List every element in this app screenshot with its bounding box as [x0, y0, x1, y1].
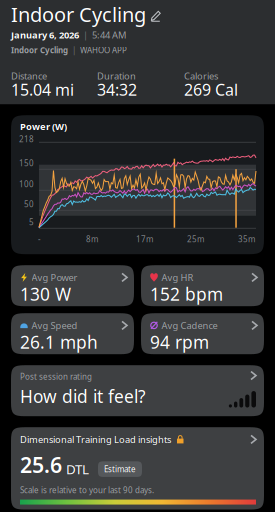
staticText: Dimensional Training Load insights	[20, 433, 171, 446]
button[interactable]: Avg Power	[11, 265, 134, 306]
staticText: Power (W)	[20, 120, 67, 133]
staticText: |	[72, 45, 76, 56]
staticText: 100	[19, 179, 34, 189]
staticText: 150	[19, 158, 34, 168]
staticText: Duration	[97, 70, 136, 82]
staticText: Indoor Cycling	[11, 1, 146, 28]
button[interactable]: Avg Cadence	[141, 313, 264, 354]
staticText: Avg Speed	[31, 319, 77, 332]
staticText: 15.04 mi	[11, 79, 74, 100]
button[interactable]: Avg Speed	[11, 313, 134, 354]
staticText: Post session rating	[20, 371, 92, 382]
staticText: |	[83, 29, 88, 41]
staticText: 5	[29, 217, 34, 227]
staticText: 94 rpm	[150, 331, 209, 354]
staticText: 269 Cal	[184, 79, 238, 100]
staticText: Scale is relative to your last 90 days.	[20, 485, 154, 495]
staticText: 130 W	[20, 283, 71, 306]
staticText: Distance	[11, 70, 47, 82]
staticText: Avg Cadence	[161, 319, 217, 332]
staticText: DTL	[66, 460, 89, 478]
staticText: 25.6	[20, 451, 62, 479]
staticText: Avg HR	[161, 271, 193, 284]
button[interactable]: Dimensional Training Load insights	[11, 427, 264, 509]
staticText: 34:32	[97, 79, 137, 100]
staticText: -	[38, 234, 41, 244]
staticText: 35m	[238, 234, 255, 244]
button[interactable]: Rename activity	[146, 7, 166, 22]
staticText: Estimate	[104, 464, 136, 474]
button[interactable]: Avg HR	[141, 265, 264, 306]
staticText: 50	[24, 199, 34, 209]
staticText: January 6, 2026	[11, 29, 79, 41]
staticText: Calories	[184, 70, 218, 82]
staticText: How did it feel?	[20, 385, 146, 408]
staticText: Indoor Cycling	[11, 45, 68, 56]
button[interactable]: Post session rating	[11, 365, 264, 416]
staticText: 152 bpm	[150, 283, 223, 306]
staticText: 5:44 AM	[92, 29, 126, 41]
staticText: 8m	[86, 234, 98, 244]
staticText: 25m	[187, 234, 204, 244]
staticText: 17m	[136, 234, 153, 244]
staticText: WAHOO APP	[80, 45, 127, 56]
staticText: 26.1 mph	[20, 331, 98, 354]
staticText: Avg Power	[31, 271, 77, 284]
staticText: 218	[19, 134, 34, 144]
